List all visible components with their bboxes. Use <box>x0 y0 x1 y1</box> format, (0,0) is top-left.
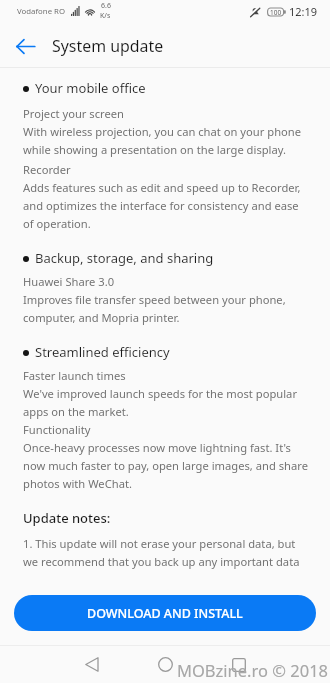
staticText: DOWNLOAD AND INSTALL <box>87 605 243 622</box>
staticText: Huawei Share 3.0 <box>23 272 115 290</box>
staticText: Faster launch times <box>23 366 126 384</box>
staticText: Project your screen <box>23 104 125 122</box>
staticText: Backup, storage, and sharing <box>35 249 214 267</box>
staticText: 100 <box>270 8 282 17</box>
button[interactable]: Recents <box>216 646 261 683</box>
staticText: Improves file transfer speed between you… <box>23 290 308 326</box>
staticText: Functionality <box>23 420 91 438</box>
button[interactable]: DOWNLOAD AND INSTALL <box>14 595 316 631</box>
staticText: Adds features such as edit and speed up … <box>23 178 308 232</box>
staticText: Your mobile office <box>35 79 146 97</box>
staticText: We've improved launch speeds for the mos… <box>23 384 308 420</box>
staticText: 1. This update will not erase your perso… <box>23 534 308 570</box>
staticText: MOBzine.ro © 2018 <box>177 659 329 681</box>
staticText: K/s <box>100 11 111 21</box>
staticText: 12:19 <box>289 4 318 19</box>
staticText: Once-heavy processes now move lightning … <box>23 438 308 492</box>
staticText: With wireless projection, you can chat o… <box>23 122 308 158</box>
staticText: Update notes: <box>23 509 111 527</box>
staticText: Vodafone RO <box>17 6 65 17</box>
button[interactable]: Back <box>10 31 40 61</box>
staticText: Streamlined efficiency <box>35 343 170 361</box>
staticText: System update <box>52 35 164 57</box>
staticText: 6.6 <box>101 1 111 11</box>
button[interactable]: Back <box>69 646 114 683</box>
staticText: Recorder <box>23 160 71 178</box>
button[interactable]: Home <box>143 646 188 683</box>
